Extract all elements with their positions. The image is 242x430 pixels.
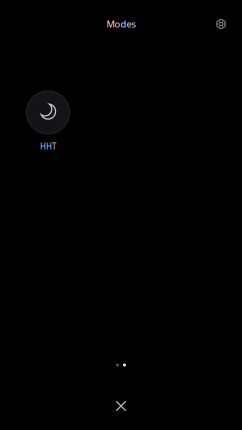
button[interactable]: HHT: [11, 91, 85, 151]
staticText: HHT: [40, 141, 56, 152]
staticText: Modes: [106, 18, 135, 30]
button[interactable]: Settings: [208, 12, 234, 36]
button[interactable]: Close: [97, 395, 145, 417]
